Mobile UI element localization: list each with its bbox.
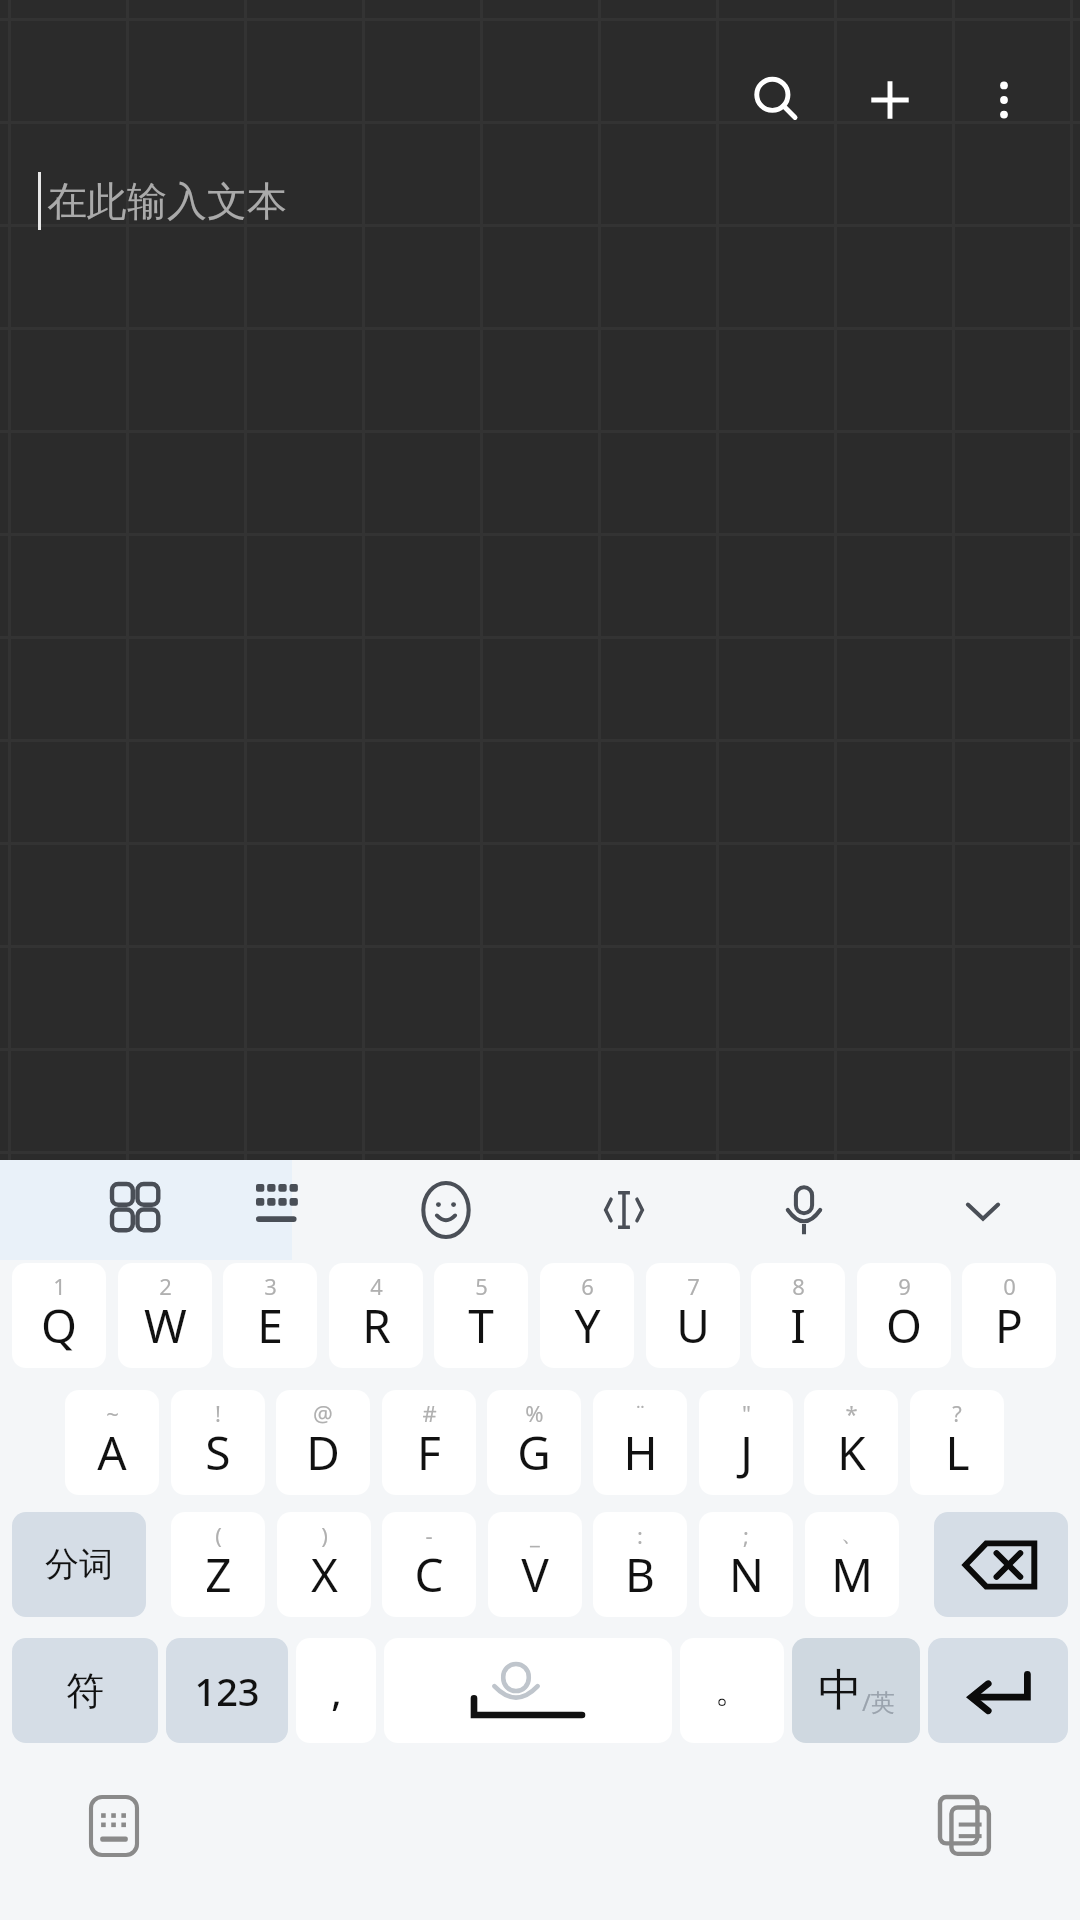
button[interactable]: Space — [384, 1638, 672, 1743]
button[interactable]: ; — [699, 1512, 793, 1617]
button[interactable]: - — [382, 1512, 476, 1617]
staticText: Q — [41, 1294, 77, 1357]
staticText: S — [205, 1421, 231, 1484]
button[interactable]: Voice input — [762, 1168, 846, 1252]
staticText: 3 — [264, 1271, 277, 1301]
button[interactable]: 。 — [680, 1638, 784, 1743]
staticText: ? — [952, 1398, 962, 1428]
staticText: A — [97, 1421, 127, 1484]
staticText: C — [414, 1543, 444, 1606]
staticText: * — [845, 1398, 858, 1428]
button[interactable]: , — [296, 1638, 376, 1743]
staticText: 符 — [66, 1667, 104, 1715]
button[interactable]: Panels — [96, 1168, 180, 1252]
staticText: 分词 — [45, 1543, 113, 1586]
button[interactable]: _ — [488, 1512, 582, 1617]
staticText: X — [311, 1543, 338, 1606]
staticText: N — [729, 1543, 764, 1606]
button[interactable]: 分词 — [12, 1512, 146, 1617]
staticText: 8 — [792, 1271, 805, 1301]
staticText: ¨ — [634, 1398, 647, 1428]
button[interactable]: More options — [956, 52, 1052, 148]
button[interactable]: " — [699, 1390, 793, 1495]
staticText: ~ — [106, 1398, 119, 1428]
button[interactable]: ~ — [65, 1390, 159, 1495]
staticText: # — [422, 1398, 437, 1428]
button[interactable]: ? — [910, 1390, 1004, 1495]
staticText: Z — [205, 1543, 232, 1606]
button[interactable]: 3 — [223, 1263, 317, 1368]
button[interactable]: 符 — [12, 1638, 158, 1743]
staticText: 、 — [841, 1520, 863, 1548]
staticText: E — [257, 1294, 283, 1357]
button[interactable]: 5 — [434, 1263, 528, 1368]
staticText: H — [623, 1421, 658, 1484]
button[interactable]: 2 — [118, 1263, 212, 1368]
staticText: 中 — [818, 1663, 862, 1718]
button[interactable]: Search — [728, 52, 824, 148]
staticText: 2 — [159, 1271, 172, 1301]
button[interactable]: 9 — [857, 1263, 951, 1368]
button[interactable]: ) — [277, 1512, 371, 1617]
staticText: 7 — [687, 1271, 700, 1301]
button[interactable]: Chinese English toggle — [792, 1638, 920, 1743]
button[interactable]: ! — [171, 1390, 265, 1495]
staticText: 5 — [475, 1271, 488, 1301]
button[interactable]: 123 — [166, 1638, 288, 1743]
staticText: L — [945, 1421, 970, 1484]
button[interactable]: @ — [276, 1390, 370, 1495]
staticText: /英 — [862, 1685, 895, 1718]
button[interactable]: Enter — [928, 1638, 1068, 1743]
button[interactable]: ( — [171, 1512, 265, 1617]
staticText: 。 — [715, 1669, 749, 1712]
staticText: J — [740, 1421, 753, 1484]
button[interactable]: Switch keyboard — [72, 1784, 156, 1868]
staticText: Y — [574, 1294, 601, 1357]
button[interactable]: Keyboard layout — [240, 1168, 324, 1252]
staticText: : — [637, 1520, 643, 1550]
button[interactable]: 6 — [540, 1263, 634, 1368]
staticText: P — [995, 1294, 1023, 1357]
staticText: 0 — [1003, 1271, 1016, 1301]
staticText: W — [144, 1294, 187, 1357]
staticText: 6 — [581, 1271, 594, 1301]
button[interactable]: % — [487, 1390, 581, 1495]
staticText: K — [837, 1421, 866, 1484]
staticText: T — [468, 1294, 494, 1357]
staticText: I — [790, 1294, 806, 1357]
staticText: M — [831, 1543, 873, 1606]
staticText: ! — [215, 1398, 221, 1428]
staticText: 123 — [194, 1665, 260, 1717]
button[interactable]: * — [804, 1390, 898, 1495]
staticText: 4 — [370, 1271, 383, 1301]
staticText: 在此输入文本 — [47, 176, 287, 226]
staticText: ) — [321, 1520, 328, 1550]
staticText: % — [525, 1398, 544, 1428]
button[interactable]: : — [593, 1512, 687, 1617]
button[interactable]: 8 — [751, 1263, 845, 1368]
button[interactable]: Clipboard — [924, 1784, 1008, 1868]
button[interactable]: Add — [842, 52, 938, 148]
button[interactable]: 1 — [12, 1263, 106, 1368]
staticText: , — [331, 1665, 342, 1717]
button[interactable]: 7 — [646, 1263, 740, 1368]
button[interactable]: 、 — [805, 1512, 899, 1617]
staticText: - — [425, 1520, 433, 1550]
button[interactable]: 4 — [329, 1263, 423, 1368]
staticText: R — [362, 1294, 391, 1357]
staticText: 9 — [898, 1271, 911, 1301]
staticText: V — [521, 1543, 549, 1606]
staticText: G — [517, 1421, 551, 1484]
button[interactable]: Hide keyboard — [941, 1168, 1025, 1252]
staticText: U — [676, 1294, 710, 1357]
button[interactable]: ¨ — [593, 1390, 687, 1495]
button[interactable]: # — [382, 1390, 476, 1495]
staticText: @ — [313, 1398, 333, 1428]
button[interactable]: Emoji — [404, 1168, 488, 1252]
button[interactable]: Backspace — [934, 1512, 1068, 1617]
button[interactable]: 0 — [962, 1263, 1056, 1368]
staticText: _ — [530, 1520, 540, 1550]
staticText: " — [742, 1398, 751, 1428]
button[interactable]: Cursor control — [582, 1168, 666, 1252]
staticText: D — [306, 1421, 340, 1484]
